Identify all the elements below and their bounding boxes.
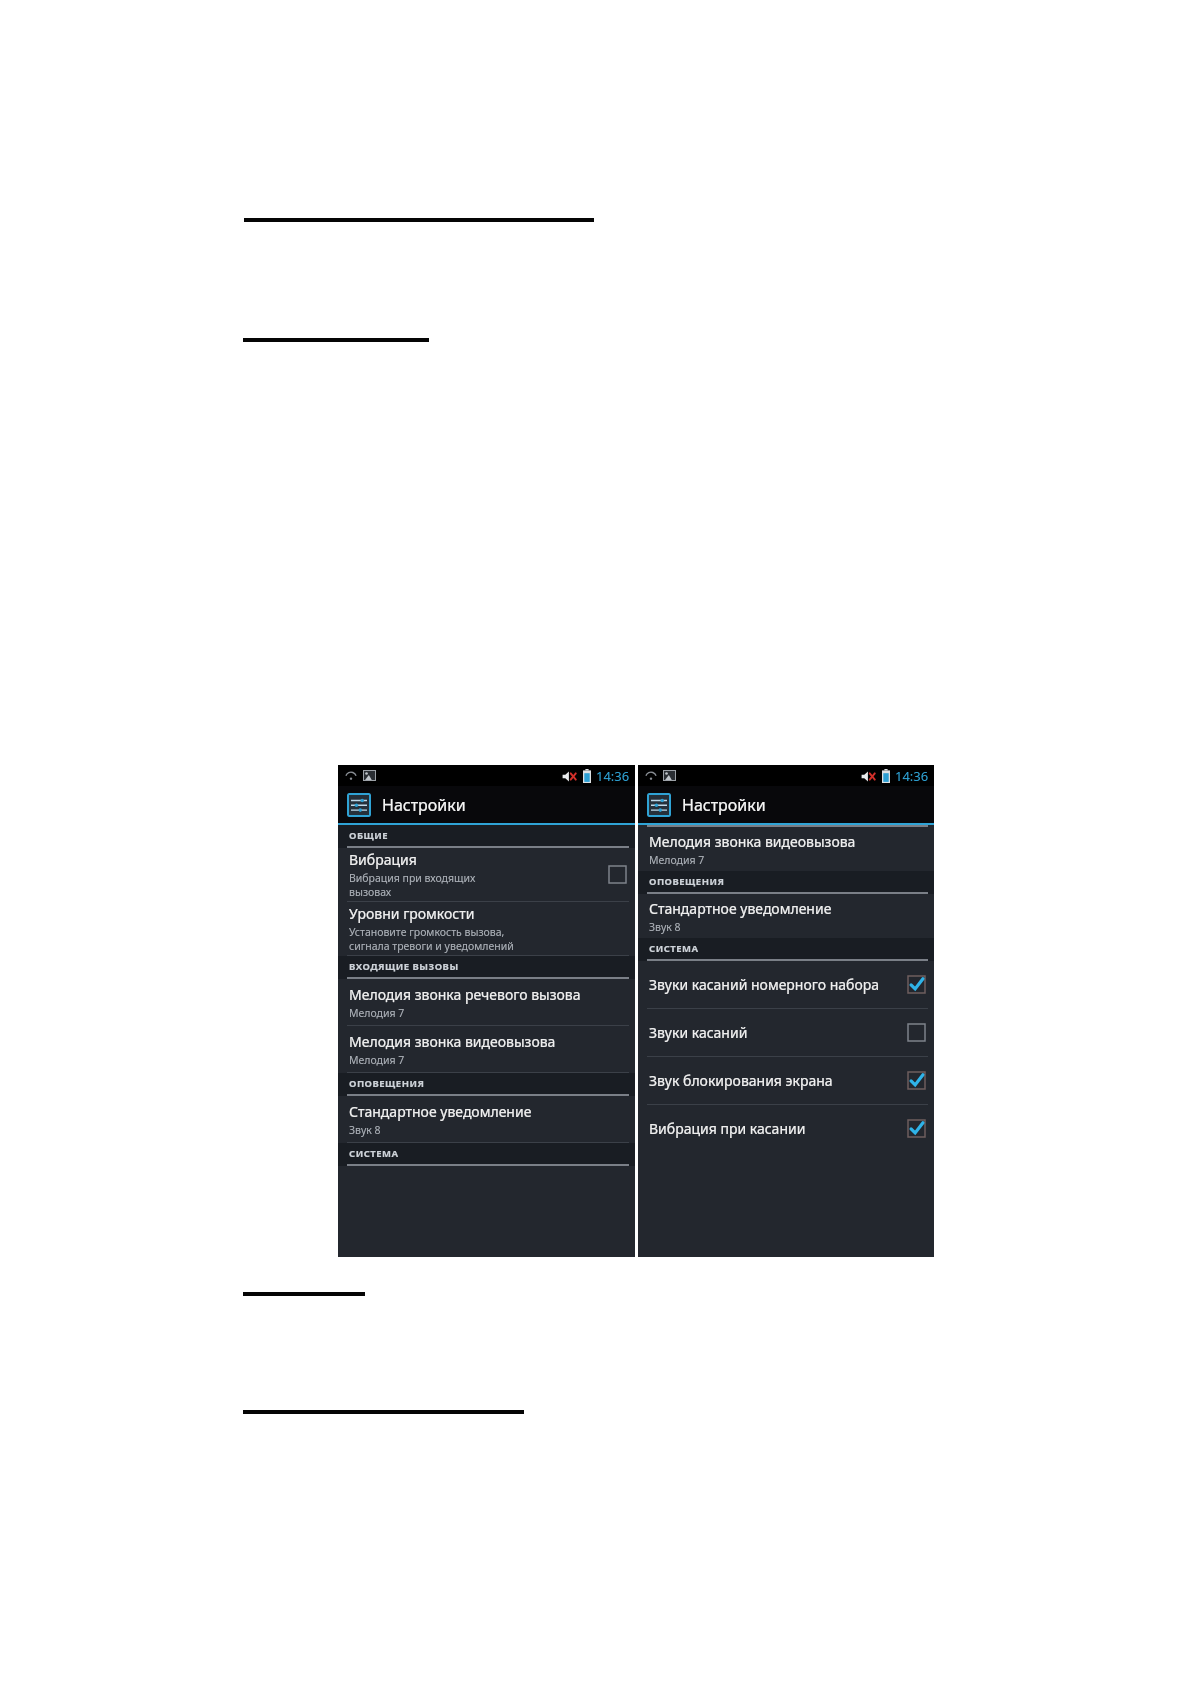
button[interactable]: Мелодия звонка речевого вызова (338, 979, 635, 1026)
staticText: Звук 8 (349, 1123, 381, 1137)
button[interactable]: Звуки касаний (638, 1009, 934, 1057)
button[interactable]: Включено (908, 976, 925, 993)
button[interactable]: Звук блокирования экрана (638, 1057, 934, 1105)
staticText: Звуки касаний (649, 1023, 748, 1042)
button[interactable]: Настройки (338, 786, 635, 823)
staticText: Звук 8 (649, 920, 681, 934)
button[interactable]: Выключено (609, 866, 626, 883)
staticText: Мелодия звонка видеовызова (349, 1032, 556, 1051)
staticText: Мелодия 7 (349, 1006, 405, 1020)
button[interactable]: Включено (908, 1072, 925, 1089)
staticText: Настройки (682, 794, 766, 816)
staticText: Мелодия звонка речевого вызова (349, 985, 581, 1004)
staticText: Звуки касаний номерного набора (649, 975, 880, 994)
staticText: Настройки (382, 794, 466, 816)
button[interactable]: Звуки касаний номерного набора (638, 961, 934, 1009)
staticText: Установите громкость вызова, сигнала тре… (349, 925, 514, 953)
staticText: Мелодия 7 (349, 1053, 405, 1067)
button[interactable]: Выключено (908, 1024, 925, 1041)
staticText: Мелодия звонка видеовызова (649, 832, 856, 851)
button[interactable]: Стандартное уведомление (338, 1096, 635, 1143)
staticText: ОБЩИЕ (349, 829, 389, 842)
staticText: Звук блокирования экрана (649, 1071, 833, 1090)
button[interactable]: Стандартное уведомление (638, 894, 934, 938)
staticText: ОПОВЕЩЕНИЯ (649, 875, 725, 888)
button[interactable]: Настройки (638, 786, 934, 823)
button[interactable]: Мелодия звонка видеовызова (638, 827, 934, 871)
staticText: ВХОДЯЩИЕ ВЫЗОВЫ (349, 960, 459, 973)
staticText: Вибрация при касании (649, 1119, 806, 1138)
button[interactable]: Вибрация при касании (638, 1105, 934, 1152)
staticText: Вибрация при входящих вызовах (349, 871, 476, 899)
staticText: Уровни громкости (349, 904, 475, 923)
button[interactable]: Уровни громкости (338, 902, 635, 956)
staticText: 14:36 (895, 767, 929, 785)
staticText: Стандартное уведомление (649, 899, 832, 918)
staticText: Мелодия 7 (649, 853, 705, 867)
staticText: СИСТЕМА (349, 1147, 399, 1160)
button[interactable]: Вибрация (338, 848, 635, 902)
staticText: ОПОВЕЩЕНИЯ (349, 1077, 425, 1090)
button[interactable]: Мелодия звонка видеовызова (338, 1026, 635, 1073)
staticText: Стандартное уведомление (349, 1102, 532, 1121)
staticText: 14:36 (596, 767, 630, 785)
staticText: СИСТЕМА (649, 942, 699, 955)
staticText: Вибрация (349, 850, 417, 869)
button[interactable]: Включено (908, 1120, 925, 1137)
